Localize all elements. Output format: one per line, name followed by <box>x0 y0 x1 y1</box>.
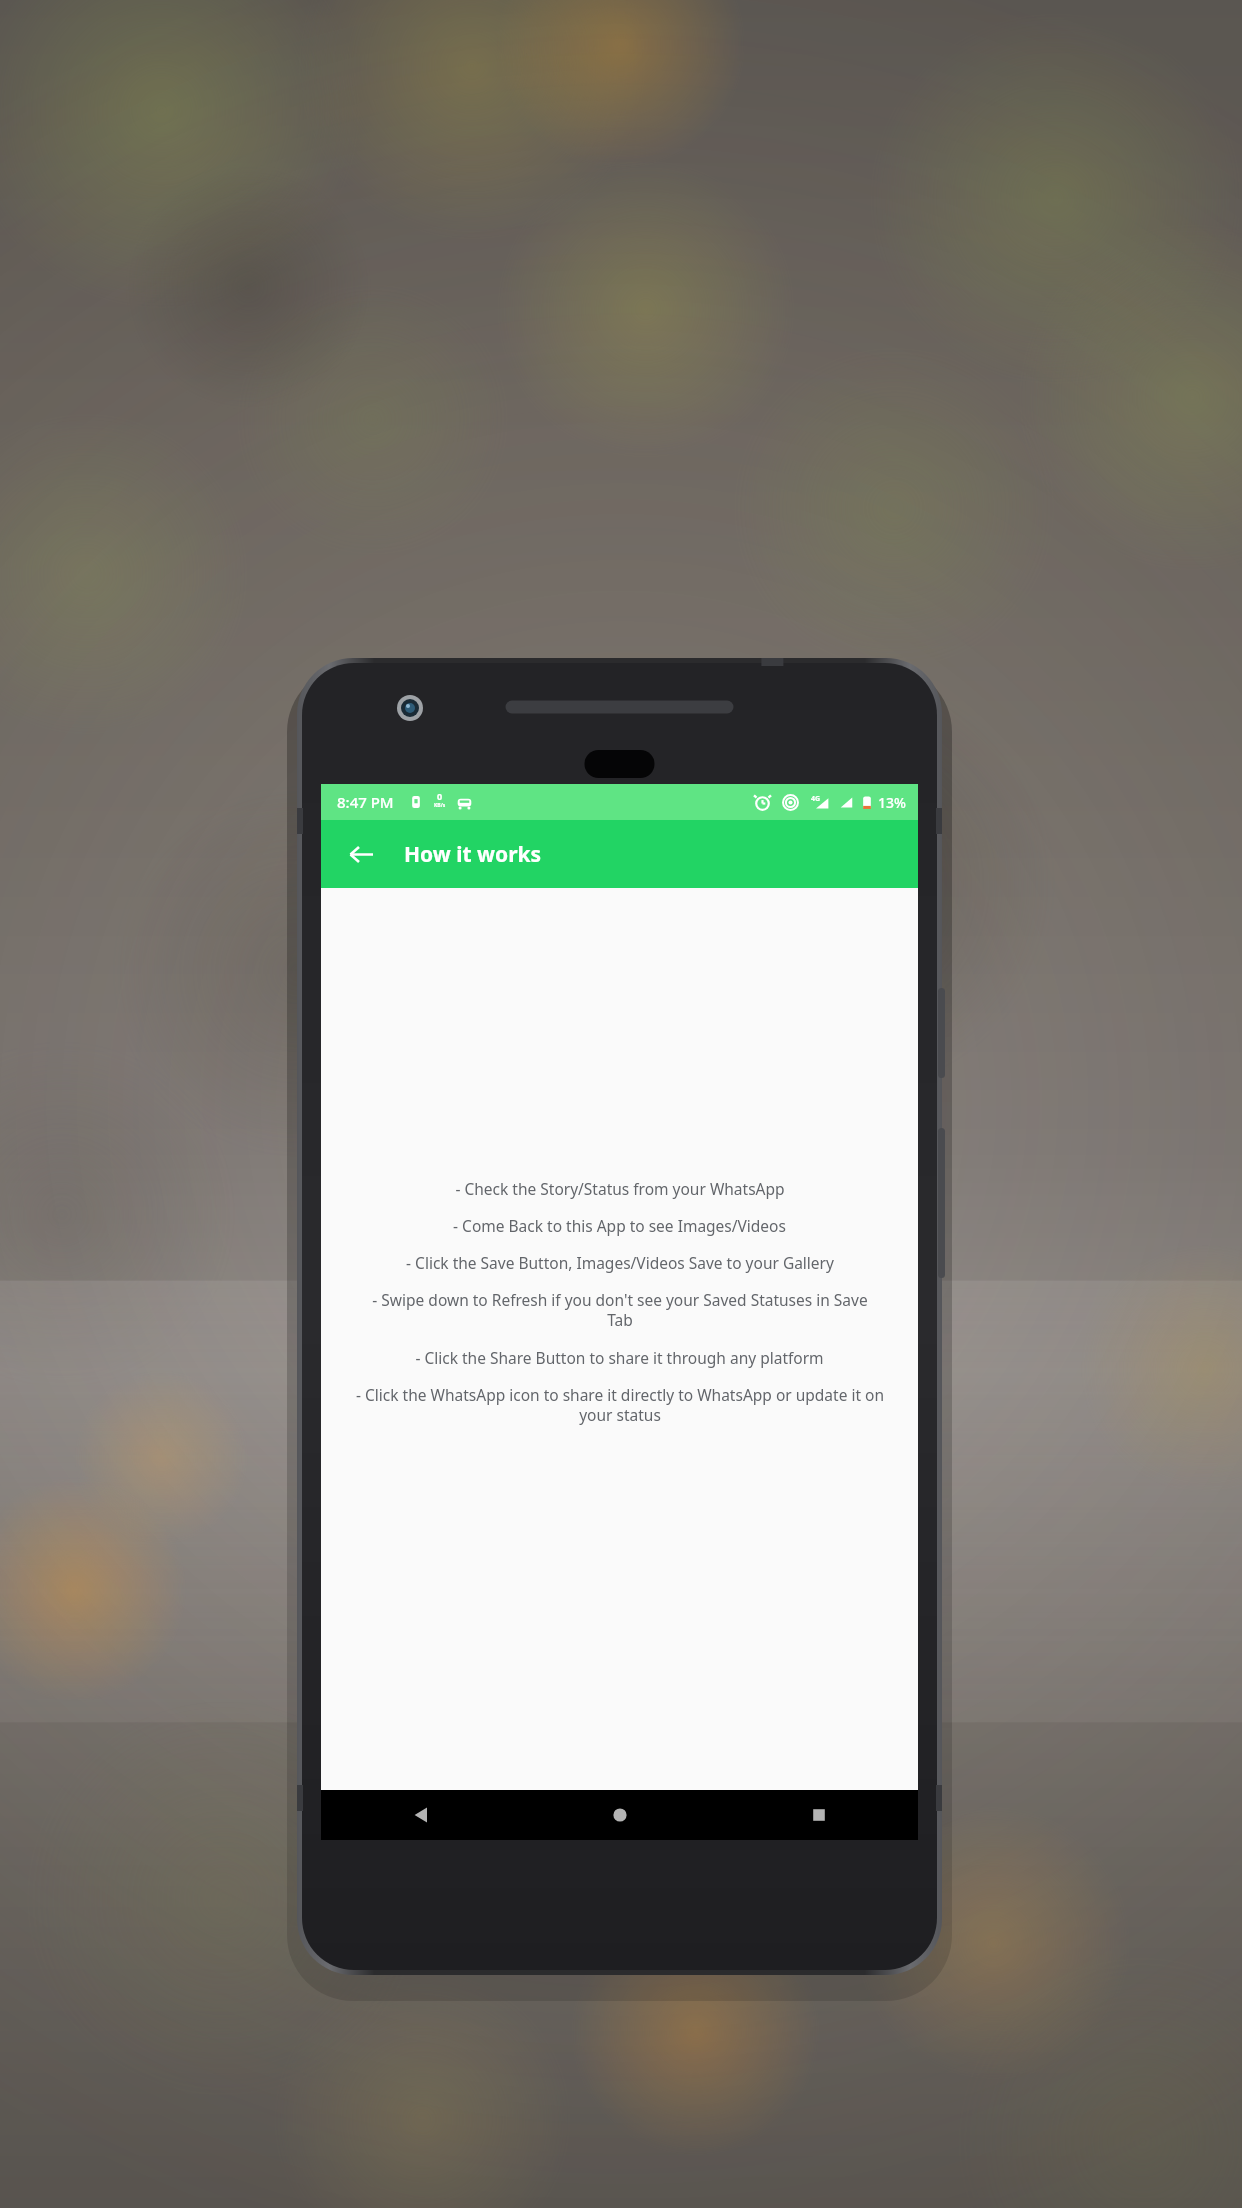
staticText: - Check the Story/Status from your Whats… <box>455 1178 785 1199</box>
staticText: - Swipe down to Refresh if you don't see… <box>361 1289 879 1331</box>
staticText: 0 <box>437 790 443 802</box>
staticText: 13% <box>878 793 906 812</box>
button[interactable]: Back <box>321 1790 520 1840</box>
staticText: - Come Back to this App to see Images/Vi… <box>453 1215 786 1236</box>
staticText: - Click the WhatsApp icon to share it di… <box>343 1384 897 1426</box>
button[interactable]: Back <box>339 832 383 876</box>
staticText: - Click the Save Button, Images/Videos S… <box>406 1252 834 1273</box>
staticText: - Click the Share Button to share it thr… <box>415 1347 824 1368</box>
button[interactable]: Recent apps <box>719 1790 918 1840</box>
staticText: 8:47 PM <box>337 792 394 812</box>
staticText: 4G <box>811 794 821 804</box>
staticText: How it works <box>404 840 542 869</box>
staticText: KB/s <box>434 802 446 809</box>
button[interactable]: Home <box>520 1790 719 1840</box>
